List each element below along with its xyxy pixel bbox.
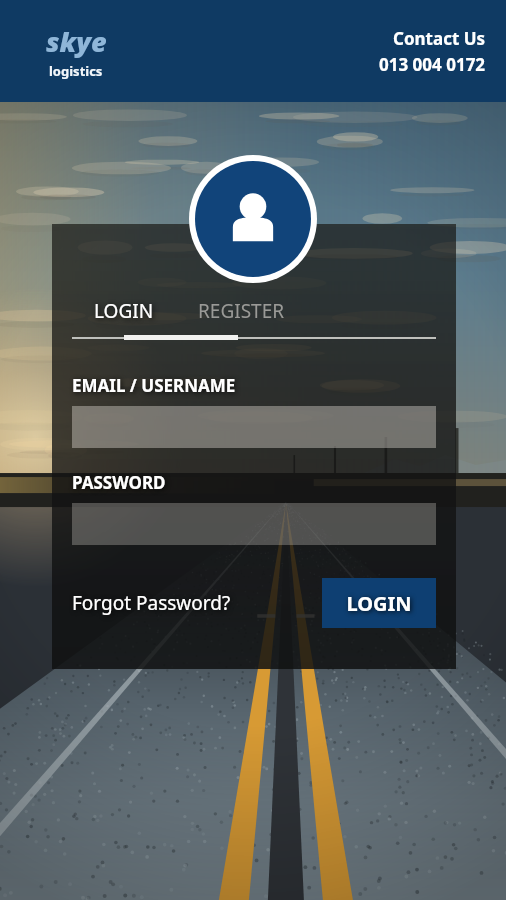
staticText: PASSWORD	[72, 471, 166, 494]
staticText: EMAIL / USERNAME	[72, 374, 236, 397]
button[interactable]: REGISTER	[176, 294, 306, 328]
staticText: skye	[46, 23, 107, 60]
button[interactable]	[72, 406, 436, 448]
staticText: 013 004 0172	[379, 53, 486, 76]
button[interactable]: LOGIN	[322, 578, 436, 628]
staticText: REGISTER	[198, 298, 285, 324]
staticText: LOGIN	[346, 590, 412, 617]
staticText: Forgot Password?	[72, 590, 231, 616]
staticText: Contact Us	[393, 27, 486, 50]
staticText: LOGIN	[94, 298, 154, 324]
button[interactable]: Account avatar	[189, 155, 317, 283]
button[interactable]: LOGIN	[72, 294, 176, 328]
staticText: logistics	[49, 62, 103, 80]
button[interactable]: Forgot Password?	[72, 583, 231, 623]
button[interactable]: Contact Us	[379, 27, 486, 76]
